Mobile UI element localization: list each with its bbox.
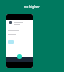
button[interactable]: Play [17,54,22,59]
button[interactable]: no higher [0,0,64,12]
button[interactable]: Play [6,14,33,68]
staticText: no higher [24,4,40,9]
